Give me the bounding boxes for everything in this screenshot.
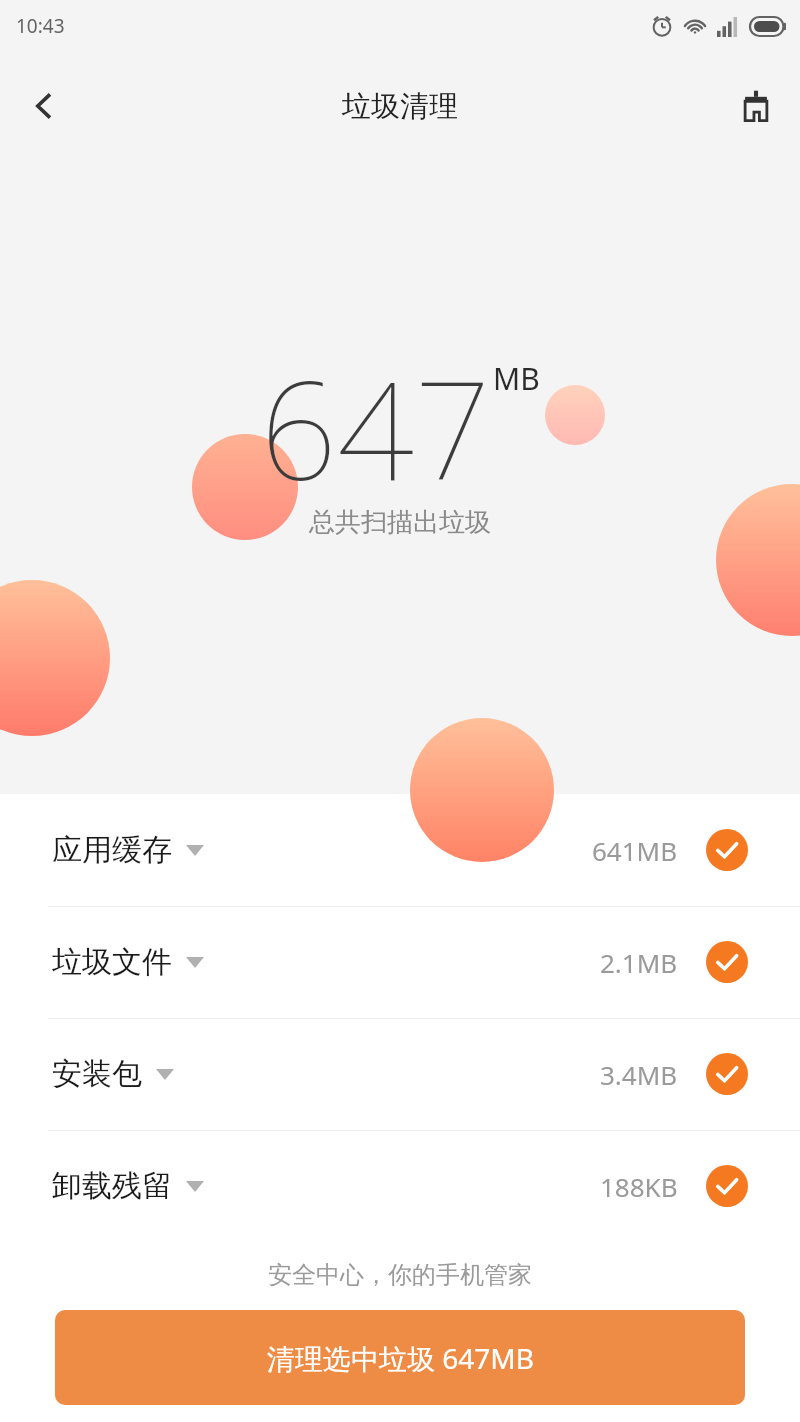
staticText: 清理选中垃圾 647MB — [267, 1339, 534, 1377]
staticText: 垃圾清理 — [342, 88, 458, 125]
button[interactable]: Back — [12, 74, 76, 138]
button[interactable]: 卸载残留 — [0, 1130, 800, 1242]
staticText: 10:43 — [16, 13, 65, 39]
button[interactable]: Selected — [706, 941, 748, 983]
staticText: 188KB — [600, 1169, 678, 1204]
staticText: 卸载残留 — [52, 1167, 172, 1205]
button[interactable]: Selected — [706, 829, 748, 871]
button[interactable]: Deep clean — [724, 74, 788, 138]
staticText: 安装包 — [52, 1055, 142, 1093]
staticText: MB — [493, 358, 540, 399]
button[interactable]: Selected — [706, 1165, 748, 1207]
staticText: 应用缓存 — [52, 831, 172, 869]
staticText: 641MB — [592, 833, 678, 868]
staticText: 总共扫描出垃圾 — [309, 506, 491, 539]
button[interactable]: 清理选中垃圾 647MB — [55, 1310, 745, 1405]
staticText: 647 — [260, 336, 491, 520]
staticText: 2.1MB — [600, 945, 678, 980]
button[interactable]: 垃圾文件 — [0, 906, 800, 1018]
button[interactable]: 安装包 — [0, 1018, 800, 1130]
button[interactable]: 应用缓存 — [0, 794, 800, 906]
staticText: 垃圾文件 — [52, 943, 172, 981]
staticText: 安全中心，你的手机管家 — [0, 1260, 800, 1290]
staticText: 3.4MB — [600, 1057, 678, 1092]
button[interactable]: Selected — [706, 1053, 748, 1095]
